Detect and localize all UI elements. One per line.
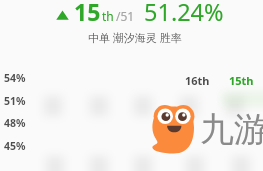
staticText: 48%: [4, 116, 26, 130]
staticText: 51.24%: [144, 0, 224, 28]
staticText: th: [102, 8, 114, 24]
staticText: 15th: [229, 73, 254, 88]
staticText: 51%: [4, 94, 26, 108]
button[interactable]: [40, 0, 230, 44]
button[interactable]: 九游 watermark: [152, 102, 263, 154]
staticText: 54%: [4, 71, 26, 85]
staticText: 16th: [185, 73, 210, 88]
staticText: 九游: [200, 108, 263, 151]
button[interactable]: Rank improved: [56, 9, 69, 21]
staticText: 15: [74, 0, 101, 27]
staticText: /51: [116, 8, 135, 24]
staticText: 中单 潮汐海灵 胜率: [88, 30, 182, 45]
staticText: 45%: [4, 139, 26, 153]
